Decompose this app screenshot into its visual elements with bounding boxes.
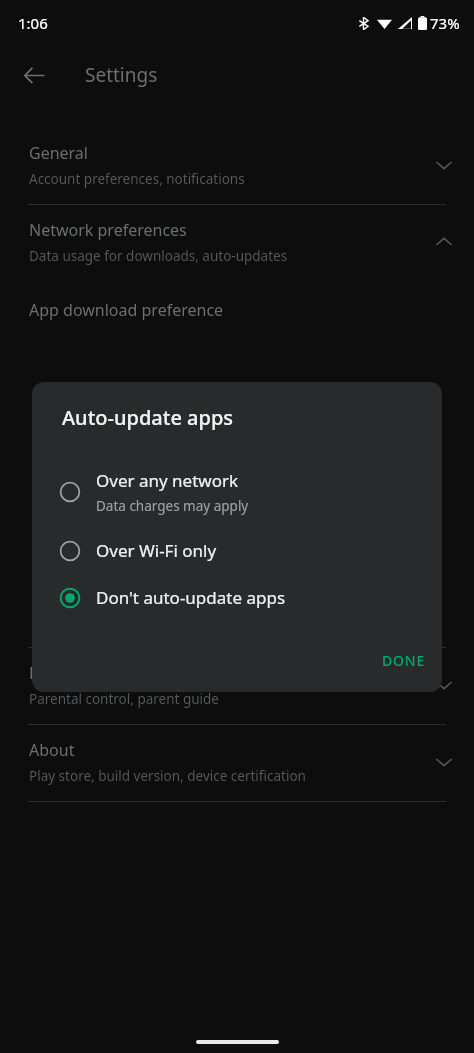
button[interactable]: Over any network [32, 457, 442, 527]
staticText: 73% [430, 13, 460, 33]
button[interactable]: Don't auto-update apps [32, 574, 442, 621]
button[interactable]: About [0, 725, 474, 801]
button[interactable]: App download preference [0, 297, 474, 331]
staticText: Play store, build version, device certif… [29, 767, 306, 785]
button[interactable]: General [0, 128, 474, 204]
button[interactable]: Over Wi-Fi only [32, 527, 442, 574]
staticText: Don't auto-update apps [96, 586, 286, 609]
staticText: 1:06 [18, 13, 48, 33]
staticText: Parental control, parent guide [29, 690, 219, 708]
staticText: General [29, 142, 88, 164]
staticText: Auto-update apps [62, 404, 234, 431]
staticText: Family [29, 662, 78, 684]
button[interactable]: DONE [366, 643, 442, 678]
staticText: Over Wi-Fi only [96, 539, 217, 562]
staticText: Data usage for downloads, auto-updates [29, 247, 288, 265]
staticText: DONE [382, 651, 426, 670]
staticText: App download preference [29, 299, 224, 321]
staticText: About [29, 739, 75, 761]
button[interactable]: Family [0, 648, 474, 724]
staticText: Data charges may apply [96, 497, 249, 515]
staticText: Over any network [96, 469, 239, 492]
button[interactable]: Back [14, 55, 54, 95]
staticText: Settings [85, 62, 158, 88]
staticText: Network preferences [29, 219, 187, 241]
staticText: Account preferences, notifications [29, 170, 245, 188]
button[interactable]: Network preferences [0, 205, 474, 281]
